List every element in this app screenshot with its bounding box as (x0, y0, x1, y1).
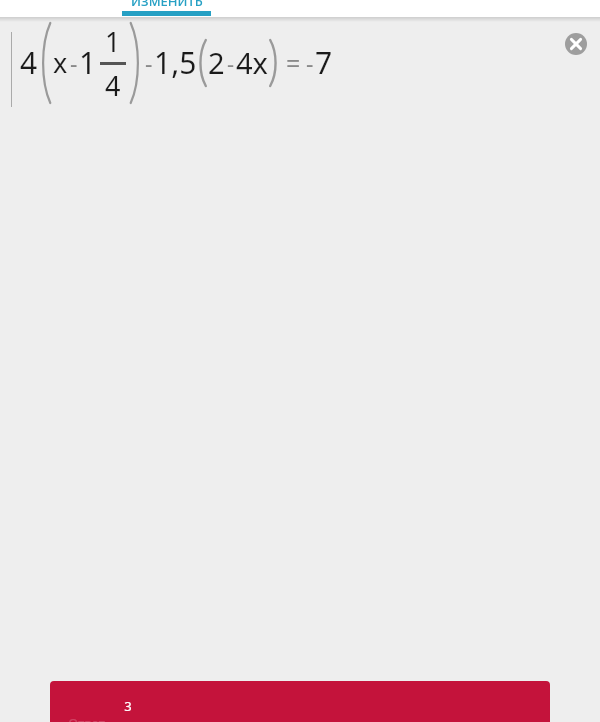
staticText: - (145, 47, 153, 78)
staticText: 2 (208, 43, 225, 82)
staticText: 4x (236, 43, 268, 82)
staticText: - (227, 48, 235, 78)
button[interactable]: 3 (50, 681, 550, 722)
staticText: 1,5 (154, 42, 197, 83)
staticText: = (286, 46, 301, 80)
staticText: 4 (20, 42, 38, 83)
staticText: 1 (79, 42, 97, 83)
staticText: ИЗМЕНИТЬ (131, 0, 203, 9)
staticText: Ответ (68, 714, 105, 722)
staticText: 4 (105, 67, 121, 104)
staticText: 7 (315, 42, 333, 83)
staticText: x (53, 44, 68, 81)
staticText: 3 (124, 697, 132, 715)
staticText: - (70, 47, 78, 78)
button[interactable]: ИЗМЕНИТЬ (106, 0, 228, 9)
staticText: 1 (105, 23, 121, 60)
staticText: - (306, 47, 314, 78)
button[interactable]: Close (558, 26, 594, 62)
